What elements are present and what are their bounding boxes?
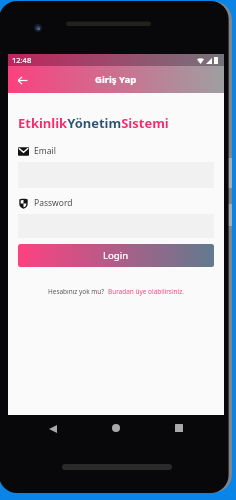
staticText: Email	[34, 145, 56, 157]
staticText: Login	[103, 249, 129, 262]
button[interactable]: Buradan üye olabilirsiniz.	[108, 287, 184, 296]
button[interactable]: Home	[107, 419, 124, 436]
staticText: Buradan üye olabilirsiniz.	[108, 287, 184, 296]
staticText: EtkinlikYönetimSistemi	[18, 114, 169, 132]
staticText: Password	[34, 197, 73, 209]
button[interactable]: Back	[14, 72, 30, 88]
staticText: Giriş Yap	[95, 73, 137, 86]
button[interactable]: Login	[18, 244, 214, 267]
button[interactable]: Back	[44, 420, 61, 437]
staticText: 12:48	[12, 55, 32, 65]
button[interactable]: Recent apps	[170, 419, 187, 436]
staticText: Hesabınız yok mu?	[48, 287, 108, 296]
